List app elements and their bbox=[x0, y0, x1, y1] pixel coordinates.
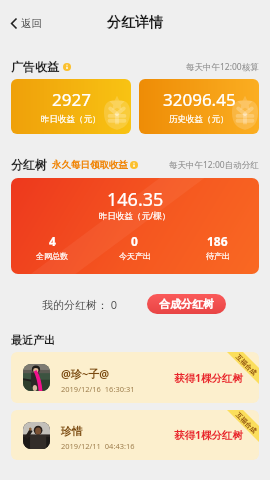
staticText: 分红详情 bbox=[107, 14, 163, 32]
staticText: 永久每日领取收益 bbox=[52, 159, 128, 171]
staticText: 返回 bbox=[21, 17, 42, 30]
staticText: 分红树 bbox=[11, 157, 47, 172]
button[interactable]: 合成分红树 bbox=[147, 294, 226, 314]
staticText: 最近产出 bbox=[11, 333, 55, 347]
staticText: 历史收益（元） bbox=[169, 114, 229, 125]
staticText: 32096.45 bbox=[163, 88, 236, 111]
button[interactable]: 互福合成 bbox=[11, 352, 259, 403]
staticText: 待产出 bbox=[206, 251, 230, 261]
staticText: 互福合成 bbox=[234, 353, 258, 377]
button[interactable]: 2927 bbox=[11, 79, 131, 134]
staticText: 0 bbox=[131, 233, 138, 249]
staticText: 2019/12/16 16:30:31 bbox=[61, 384, 135, 394]
staticText: 今天产出 bbox=[119, 251, 151, 261]
button[interactable]: 32096.45 bbox=[139, 79, 259, 134]
button[interactable]: 返回 bbox=[7, 14, 46, 33]
staticText: 每天中午12:00自动分红 bbox=[169, 159, 259, 171]
button[interactable]: 146.35 bbox=[11, 178, 259, 274]
staticText: 每天中午12:00核算 bbox=[186, 61, 259, 73]
staticText: 2927 bbox=[52, 88, 91, 111]
staticText: 4 bbox=[49, 233, 56, 249]
staticText: 获得1棵分红树 bbox=[174, 428, 244, 442]
staticText: 全网总数 bbox=[36, 251, 68, 261]
staticText: 146.35 bbox=[107, 187, 164, 212]
button[interactable]: 互福合成 bbox=[11, 410, 259, 460]
staticText: 2019/12/11 04:43:16 bbox=[61, 441, 135, 451]
staticText: 广告收益 bbox=[11, 59, 59, 74]
staticText: @珍~子@ bbox=[61, 366, 110, 381]
staticText: 互福合成 bbox=[234, 411, 258, 435]
staticText: 我的分红树： 0 bbox=[42, 297, 118, 312]
staticText: 合成分红树 bbox=[159, 297, 214, 311]
staticText: 获得1棵分红树 bbox=[174, 371, 244, 385]
staticText: 昨日收益（元/棵） bbox=[99, 210, 171, 222]
staticText: 昨日收益（元） bbox=[41, 114, 101, 125]
staticText: 珍惜 bbox=[61, 424, 83, 438]
staticText: 186 bbox=[207, 233, 228, 249]
